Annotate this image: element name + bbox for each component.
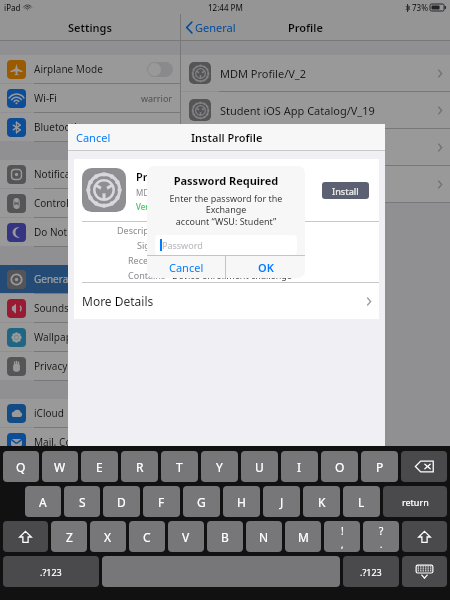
- button[interactable]: General: [186, 20, 236, 35]
- staticText: D: [117, 494, 126, 510]
- staticText: .: [380, 538, 383, 550]
- staticText: MDM Server: [136, 187, 183, 198]
- button[interactable]: Notifications: [7, 160, 173, 188]
- staticText: Received: [128, 254, 166, 266]
- button[interactable]: Shift: [402, 521, 447, 552]
- button[interactable]: Shift: [3, 521, 48, 552]
- staticText: B: [221, 529, 229, 545]
- staticText: ,: [341, 538, 344, 550]
- button[interactable]: Wallpapers: [7, 323, 173, 351]
- staticText: Device enrollment challenge: [172, 269, 292, 281]
- button[interactable]: ?: [363, 521, 399, 552]
- button[interactable]: R: [121, 451, 158, 482]
- button[interactable]: A: [25, 486, 61, 517]
- button[interactable]: M: [285, 521, 321, 552]
- button[interactable]: !: [324, 521, 360, 552]
- staticText: .?123: [360, 566, 382, 578]
- staticText: .?123: [40, 566, 62, 578]
- button[interactable]: Sounds: [7, 294, 173, 322]
- button[interactable]: Cancel: [76, 130, 111, 145]
- button[interactable]: Z: [51, 521, 87, 552]
- button[interactable]: Backspace: [401, 451, 447, 482]
- button[interactable]: Bluetooth: [7, 113, 173, 141]
- button[interactable]: O: [321, 451, 358, 482]
- staticText: Airplane Mode: [34, 62, 103, 76]
- staticText: C: [143, 529, 151, 545]
- button[interactable]: [102, 556, 340, 587]
- button[interactable]: Do Not Disturb: [7, 218, 173, 246]
- button[interactable]: [189, 129, 442, 165]
- button[interactable]: B: [207, 521, 243, 552]
- staticText: T: [176, 459, 183, 475]
- button[interactable]: Install: [322, 182, 369, 199]
- button[interactable]: W: [42, 451, 78, 482]
- button[interactable]: V: [168, 521, 204, 552]
- staticText: Settings: [68, 20, 112, 35]
- button[interactable]: T: [161, 451, 198, 482]
- staticText: Notifications: [34, 167, 94, 181]
- button[interactable]: iCloud: [7, 399, 173, 427]
- button[interactable]: return: [383, 486, 447, 517]
- button[interactable]: S: [64, 486, 100, 517]
- button[interactable]: P: [361, 451, 398, 482]
- staticText: Install: [332, 185, 359, 197]
- button[interactable]: G: [183, 486, 220, 517]
- button[interactable]: [189, 166, 442, 202]
- button[interactable]: Wi-Fi: [7, 84, 173, 112]
- button[interactable]: OK: [226, 256, 305, 278]
- staticText: G: [197, 494, 206, 510]
- staticText: Cancel: [169, 260, 204, 275]
- button[interactable]: General: [7, 265, 173, 293]
- button[interactable]: I: [281, 451, 318, 482]
- button[interactable]: L: [343, 486, 380, 517]
- button[interactable]: E: [81, 451, 118, 482]
- button[interactable]: Q: [3, 451, 39, 482]
- staticText: Verified: [136, 201, 165, 212]
- button[interactable]: H: [223, 486, 260, 517]
- button[interactable]: J: [263, 486, 300, 517]
- staticText: F: [158, 494, 165, 510]
- button[interactable]: More Details: [82, 283, 371, 319]
- button[interactable]: Hide keyboard: [402, 556, 447, 587]
- staticText: Mail, Contacts: [34, 435, 101, 449]
- button[interactable]: MDM Profile/V_2: [189, 55, 442, 91]
- staticText: Description: [117, 224, 166, 236]
- button[interactable]: X: [90, 521, 126, 552]
- staticText: Password Required: [147, 173, 305, 188]
- button[interactable]: Cancel: [147, 256, 225, 278]
- button[interactable]: K: [303, 486, 340, 517]
- staticText: A: [39, 494, 47, 510]
- button[interactable]: Password: [155, 235, 297, 255]
- staticText: O: [335, 459, 345, 475]
- staticText: Y: [216, 459, 223, 475]
- staticText: L: [358, 494, 365, 510]
- staticText: S: [79, 494, 86, 510]
- button[interactable]: N: [246, 521, 282, 552]
- button[interactable]: Y: [201, 451, 238, 482]
- button[interactable]: Notes: [7, 457, 173, 485]
- staticText: I: [297, 459, 302, 475]
- button[interactable]: Privacy: [7, 352, 173, 380]
- staticText: Privacy: [34, 359, 68, 373]
- button[interactable]: Mail, Contacts: [7, 428, 173, 456]
- staticText: Bluetooth: [34, 120, 81, 134]
- button[interactable]: Control Center: [7, 189, 173, 217]
- staticText: General: [195, 20, 236, 35]
- staticText: warrior: [141, 92, 173, 104]
- staticText: V: [182, 529, 190, 545]
- staticText: Profile: [288, 20, 323, 35]
- button[interactable]: .?123: [3, 556, 99, 587]
- button[interactable]: D: [103, 486, 140, 517]
- staticText: E: [96, 459, 103, 475]
- button[interactable]: U: [241, 451, 278, 482]
- staticText: R: [136, 459, 144, 475]
- button[interactable]: .?123: [343, 556, 399, 587]
- button[interactable]: Student iOS App Catalog/V_19: [189, 92, 442, 128]
- staticText: iCloud: [34, 406, 64, 420]
- button[interactable]: C: [129, 521, 165, 552]
- staticText: H: [237, 494, 246, 510]
- button[interactable]: F: [143, 486, 180, 517]
- staticText: Do Not Disturb: [34, 225, 105, 239]
- staticText: W: [54, 459, 66, 475]
- button[interactable]: Airplane Mode: [7, 55, 173, 83]
